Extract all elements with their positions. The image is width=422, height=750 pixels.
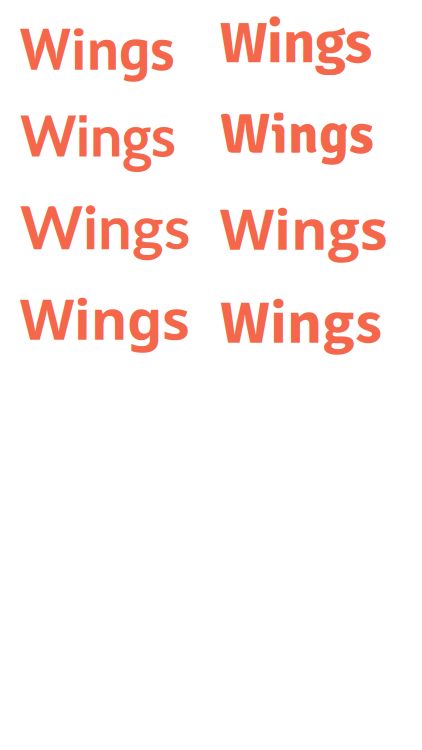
staticText: Wings [20,280,190,356]
staticText: Wings [20,190,190,262]
staticText: Wings [220,10,372,77]
staticText: Wings [20,10,175,86]
staticText: Wings [220,190,388,266]
staticText: Wings [220,280,382,367]
staticText: Wings [20,100,176,171]
staticText: Wings [220,100,374,169]
